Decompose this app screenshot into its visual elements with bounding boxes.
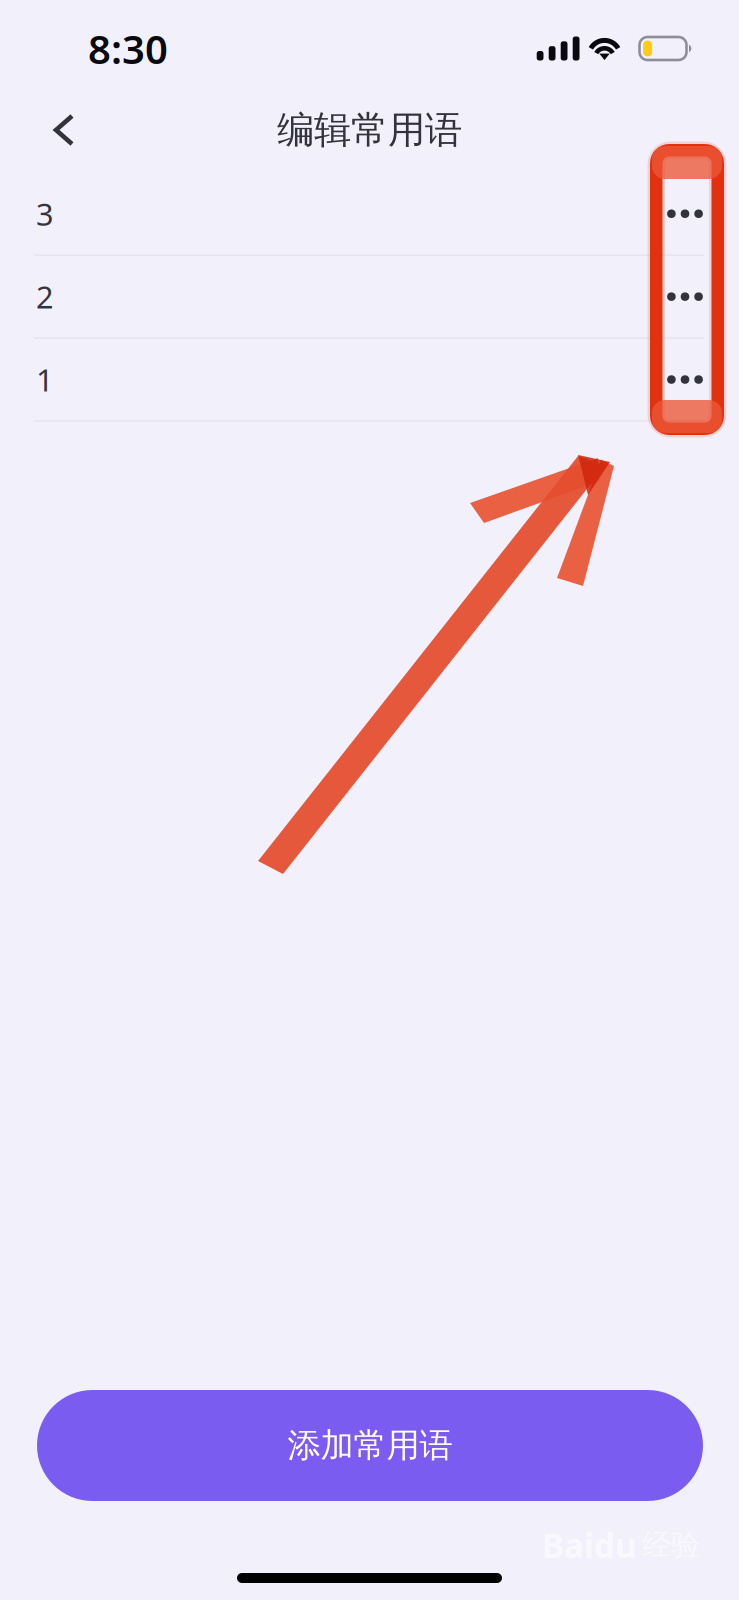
- staticText: 8:30: [88, 22, 168, 75]
- button[interactable]: More actions for 2: [649, 256, 721, 337]
- button[interactable]: Back: [28, 94, 100, 166]
- button[interactable]: More actions for 1: [649, 339, 721, 420]
- staticText: 编辑常用语: [277, 107, 462, 153]
- staticText: 1: [36, 359, 54, 400]
- staticText: 3: [36, 193, 54, 234]
- staticText: 添加常用语: [287, 1425, 452, 1466]
- staticText: 2: [36, 276, 54, 317]
- button[interactable]: More actions for 3: [649, 173, 721, 254]
- button[interactable]: 添加常用语: [37, 1390, 703, 1501]
- staticText: Baidu: [542, 1523, 637, 1567]
